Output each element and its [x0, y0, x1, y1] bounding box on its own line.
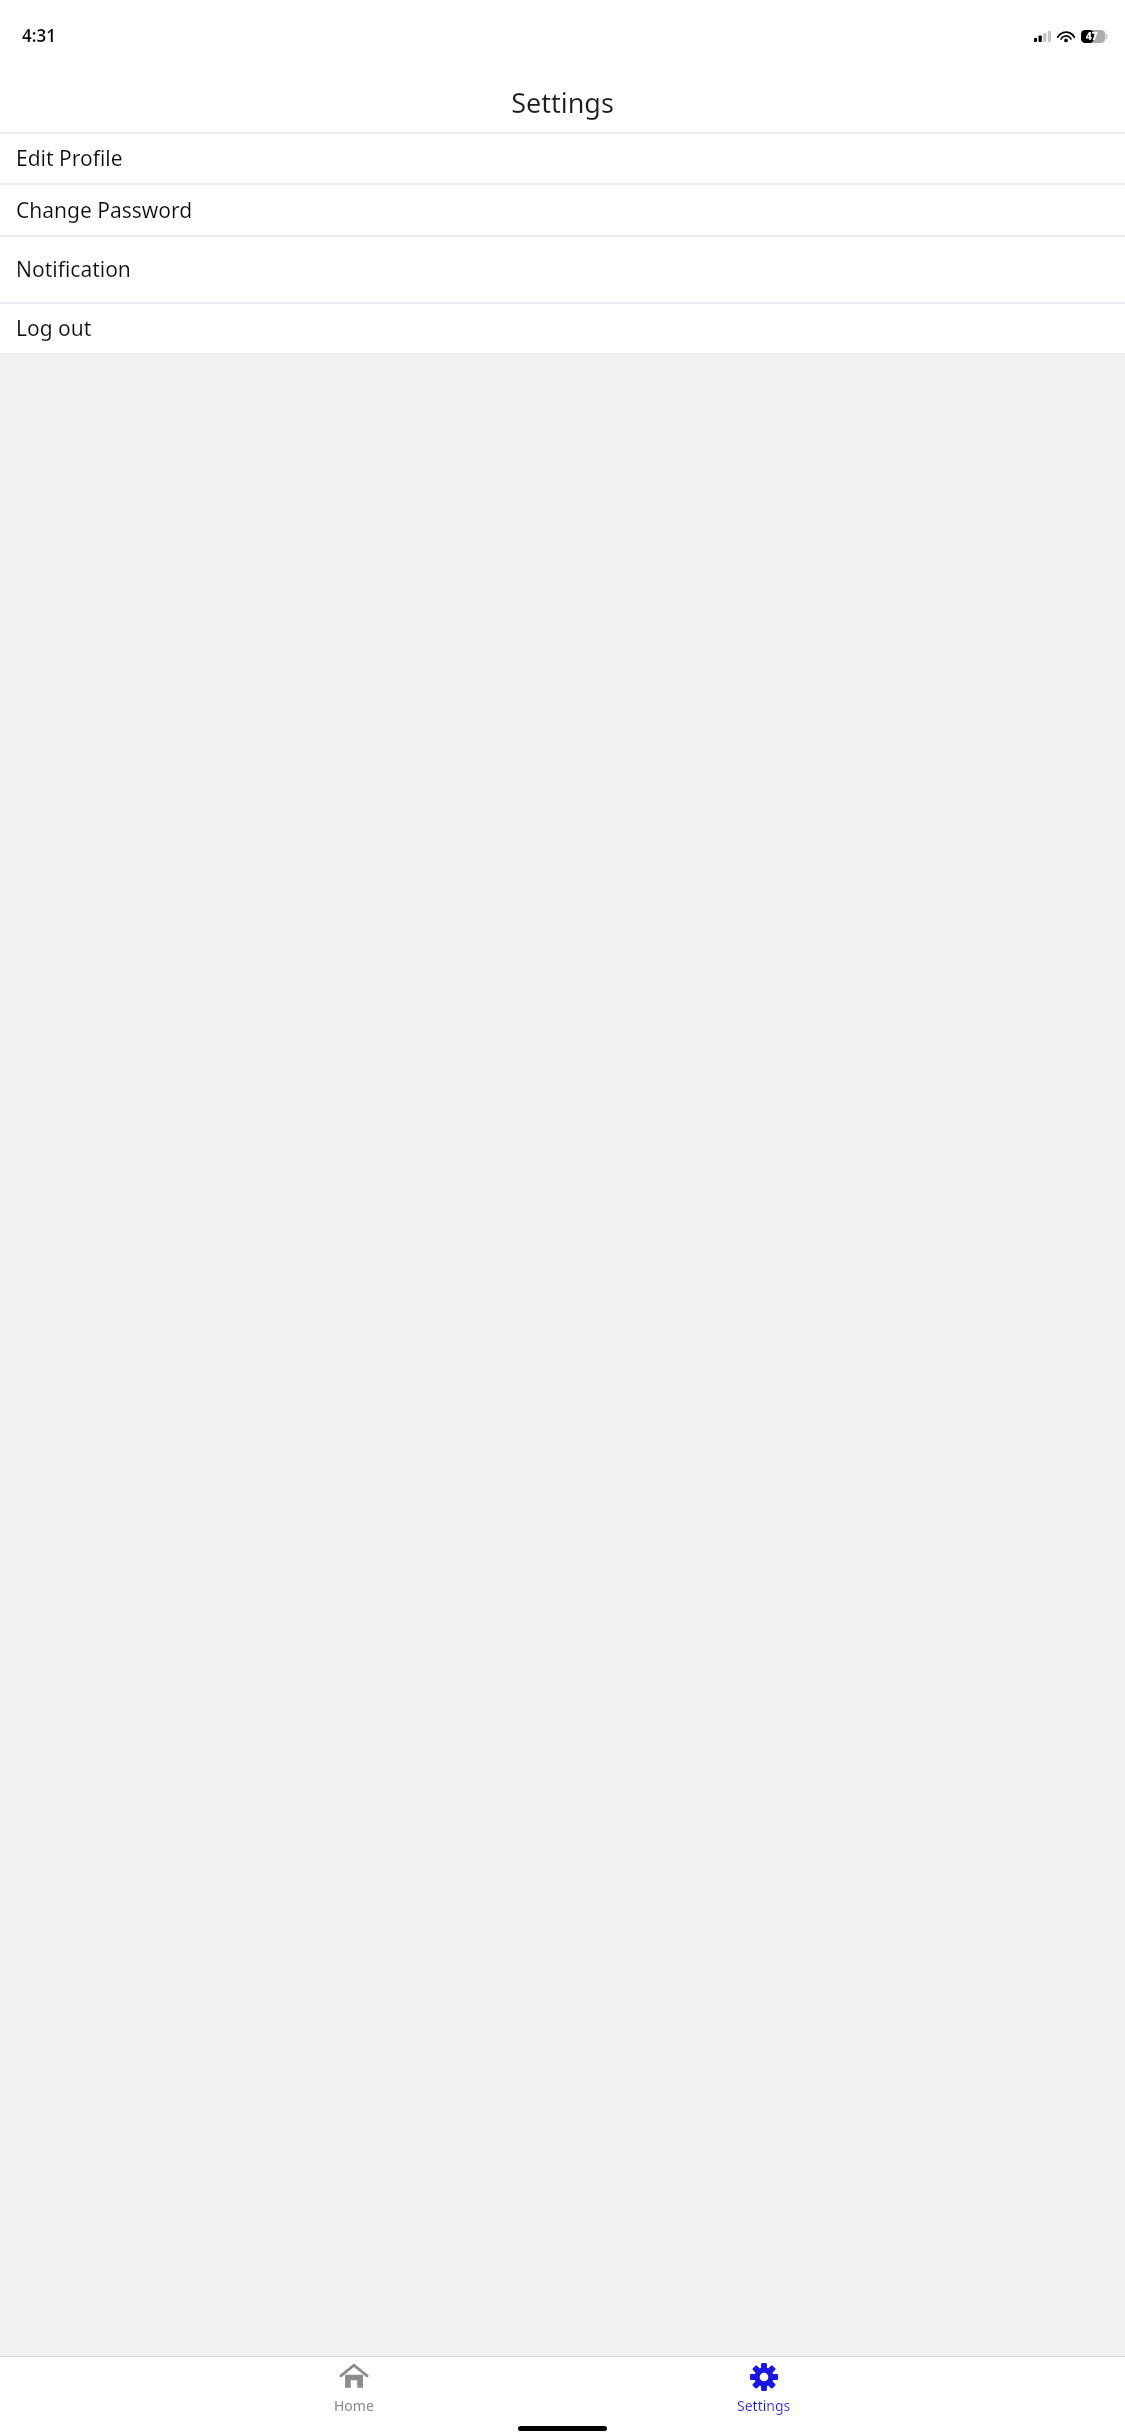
button[interactable]: Notification [0, 237, 1125, 302]
staticText: Settings [737, 2396, 791, 2415]
button[interactable]: Edit Profile [0, 134, 1125, 183]
staticText: Settings [511, 84, 614, 121]
button[interactable]: Log out [0, 304, 1125, 353]
staticText: Edit Profile [16, 144, 123, 173]
staticText: Notification [16, 255, 131, 284]
staticText: 4:31 [22, 24, 56, 47]
staticText: Change Password [16, 196, 193, 225]
staticText: Home [334, 2396, 374, 2415]
button[interactable]: Settings [707, 2359, 821, 2419]
button[interactable]: Change Password [0, 185, 1125, 235]
button[interactable]: Home [304, 2359, 404, 2419]
staticText: Log out [16, 314, 92, 343]
staticText: 47 [1086, 29, 1098, 43]
